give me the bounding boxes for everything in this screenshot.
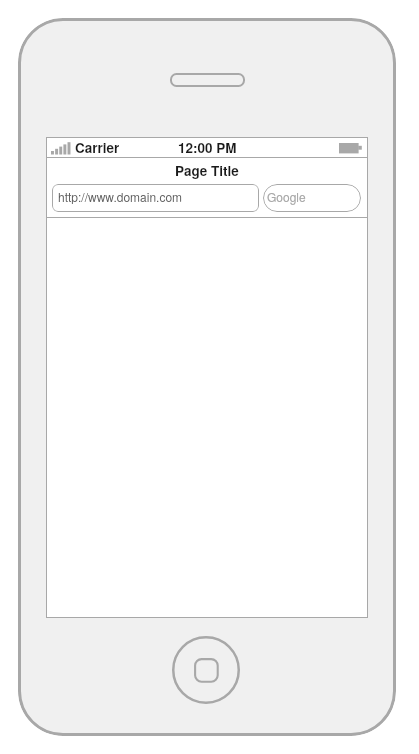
staticText: Page Title [175, 161, 239, 180]
staticText: http://www.domain.com [58, 188, 183, 205]
staticText: Google [267, 188, 306, 205]
other: Signal strength [51, 138, 72, 157]
button[interactable]: Google [263, 184, 361, 212]
staticText: Carrier [75, 138, 120, 157]
staticText: 12:00 PM [178, 138, 237, 157]
button[interactable]: http://www.domain.com [52, 184, 259, 212]
button[interactable]: Home [172, 636, 240, 704]
other: Battery full [339, 143, 362, 154]
